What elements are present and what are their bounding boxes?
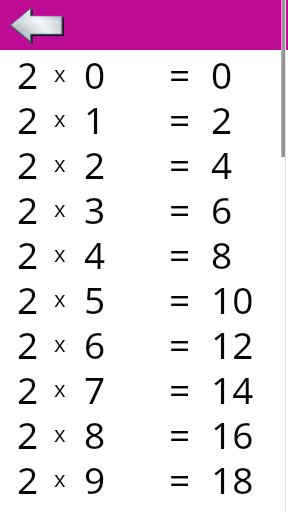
staticText: 8 [211,229,233,274]
staticText: 2 [17,184,39,229]
staticText: = [169,274,191,319]
staticText: x [54,148,66,178]
staticText: x [54,373,66,403]
staticText: = [169,184,191,229]
staticText: = [169,94,191,139]
button[interactable]: 2 [0,275,288,320]
staticText: x [54,283,66,313]
staticText: 2 [17,454,39,499]
staticText: 16 [211,409,254,454]
staticText: 9 [84,454,106,499]
staticText: 1 [84,94,106,139]
staticText: 2 [84,139,106,184]
staticText: 2 [17,319,39,364]
button[interactable]: 2 [0,320,288,365]
staticText: 12 [211,319,254,364]
staticText: 2 [17,139,39,184]
staticText: = [169,229,191,274]
staticText: 8 [84,409,106,454]
button[interactable]: 2 [0,140,288,185]
staticText: 0 [211,49,233,94]
staticText: 2 [17,274,39,319]
staticText: 14 [211,364,254,409]
staticText: = [169,319,191,364]
staticText: 2 [17,94,39,139]
staticText: 2 [17,49,39,94]
staticText: 7 [84,364,106,409]
button[interactable]: 2 [0,410,288,455]
staticText: x [54,193,66,223]
staticText: 3 [84,184,106,229]
staticText: 2 [17,409,39,454]
staticText: 5 [84,274,106,319]
button[interactable]: Back [10,6,62,44]
button[interactable]: 2 [0,455,288,500]
staticText: = [169,49,191,94]
button[interactable]: 2 [0,230,288,275]
staticText: x [54,103,66,133]
staticText: x [54,238,66,268]
staticText: 18 [211,454,254,499]
staticText: = [169,409,191,454]
staticText: 0 [84,49,106,94]
staticText: 4 [84,229,106,274]
staticText: 2 [17,364,39,409]
staticText: 6 [211,184,233,229]
button[interactable]: 2 [0,50,288,95]
staticText: = [169,364,191,409]
staticText: x [54,463,66,493]
staticText: 10 [211,274,254,319]
staticText: 2 [211,94,233,139]
button[interactable]: 2 [0,185,288,230]
staticText: x [54,58,66,88]
staticText: 6 [84,319,106,364]
button[interactable]: 2 [0,365,288,410]
staticText: 4 [211,139,233,184]
staticText: 2 [17,229,39,274]
staticText: = [169,139,191,184]
staticText: x [54,418,66,448]
button[interactable]: 2 [0,95,288,140]
staticText: = [169,454,191,499]
staticText: x [54,328,66,358]
